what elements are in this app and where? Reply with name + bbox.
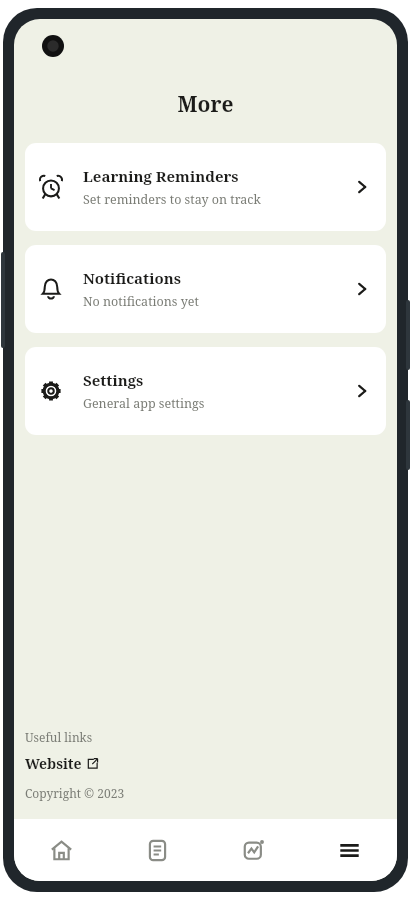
button[interactable]: Lessons <box>109 819 205 881</box>
button[interactable]: Settings <box>25 347 386 435</box>
button[interactable]: Notifications <box>25 245 386 333</box>
staticText: No notifications yet <box>83 293 199 310</box>
button[interactable]: Home <box>14 819 109 881</box>
staticText: Copyright © 2023 <box>25 785 125 801</box>
staticText: General app settings <box>83 395 205 412</box>
staticText: Useful links <box>25 729 93 745</box>
staticText: Website <box>25 754 82 773</box>
staticText: More <box>14 90 397 119</box>
button[interactable]: Learning Reminders <box>25 143 386 231</box>
button[interactable]: Website <box>25 754 98 773</box>
staticText: Set reminders to stay on track <box>83 191 261 208</box>
staticText: Settings <box>83 370 144 390</box>
staticText: Notifications <box>83 268 181 288</box>
staticText: Learning Reminders <box>83 166 239 186</box>
button[interactable]: Progress <box>205 819 301 881</box>
button[interactable]: More menu <box>301 819 397 881</box>
